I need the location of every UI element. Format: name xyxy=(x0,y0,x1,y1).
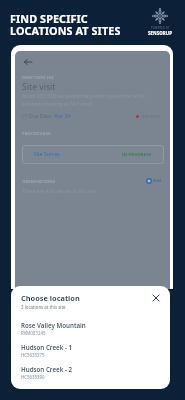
staticText: Hudson Creek - 1 xyxy=(21,343,73,351)
staticText: OVERDUE xyxy=(141,114,162,119)
staticText: Site visit xyxy=(22,81,56,93)
staticText: IN PROGRESS xyxy=(122,152,152,158)
staticText: SENSORUP xyxy=(148,30,173,36)
button[interactable]: Rose Valley Mountain xyxy=(11,320,170,342)
staticText: HC5635375 xyxy=(21,352,45,358)
staticText: Mar 24 xyxy=(54,113,71,120)
staticText: Due Date: xyxy=(29,113,54,120)
staticText: Rose Valley Mountain xyxy=(21,321,86,329)
button[interactable]: Back xyxy=(20,54,35,69)
staticText: OBSERVATIONS xyxy=(22,179,56,184)
staticText: Route 33(1308) exceeded the posted speed… xyxy=(22,93,162,107)
button[interactable]: Add xyxy=(146,178,162,184)
staticText: 3 locations at this site xyxy=(21,304,66,310)
button[interactable]: Hudson Creek - 1 xyxy=(11,342,170,364)
staticText: HC5635390 xyxy=(21,374,45,380)
staticText: Choose location xyxy=(21,293,80,303)
staticText: DEEP COVE HQ xyxy=(22,75,54,80)
staticText: Site Survey xyxy=(34,151,60,158)
staticText: There are 4 locations at this site xyxy=(22,188,97,195)
staticText: PROCEDURES xyxy=(22,131,51,136)
staticText: Hudson Creek - 2 xyxy=(21,365,73,373)
staticText: POWERED BY xyxy=(151,26,170,30)
button[interactable]: Hudson Creek - 2 xyxy=(11,364,170,386)
button[interactable]: Close xyxy=(149,291,163,305)
staticText: Add xyxy=(153,178,162,184)
staticText: RVM003245 xyxy=(21,330,46,336)
staticText: FIND SPECIFIC LOCATIONS AT SITES xyxy=(10,11,121,38)
button[interactable]: Site Survey xyxy=(22,145,164,164)
